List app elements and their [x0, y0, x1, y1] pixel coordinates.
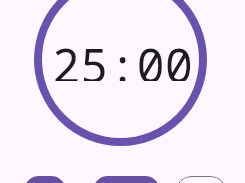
staticText: 25:00 [52, 33, 193, 81]
button[interactable]: Pause [93, 176, 160, 183]
button[interactable]: Reset [176, 176, 226, 183]
button[interactable]: Start [24, 176, 66, 183]
other: Timer progress [34, 0, 207, 146]
